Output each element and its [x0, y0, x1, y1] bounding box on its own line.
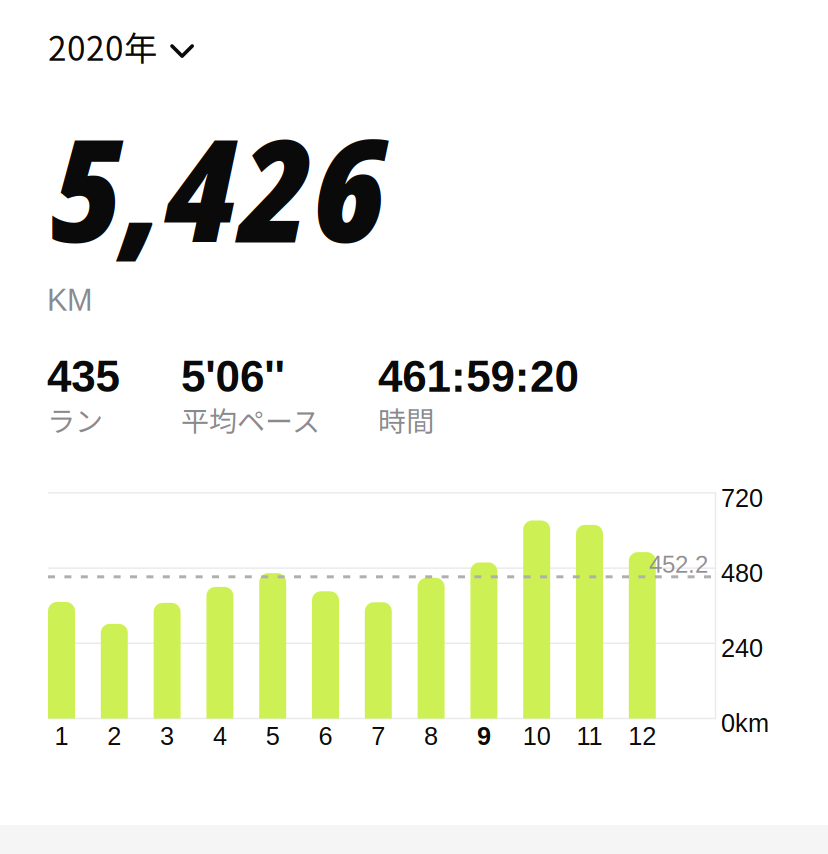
staticText: 452.2 [649, 551, 708, 578]
staticText: ラン [47, 399, 103, 440]
staticText: 720 [721, 484, 763, 512]
staticText: 480 [721, 559, 763, 587]
staticText: 6 [318, 722, 332, 750]
staticText: 240 [721, 634, 763, 662]
staticText: 時間 [378, 399, 434, 440]
staticText: 8 [424, 722, 438, 750]
staticText: KM [47, 283, 93, 317]
staticText: 2020年 [48, 22, 157, 70]
staticText: 10 [523, 722, 551, 750]
staticText: 5'06'' [181, 352, 284, 401]
staticText: 平均ペース [181, 399, 320, 440]
staticText: 0km [721, 709, 769, 737]
staticText: 2 [107, 722, 121, 750]
staticText: 9 [477, 722, 491, 750]
staticText: 461:59:20 [378, 352, 578, 401]
staticText: 435 [47, 352, 120, 401]
staticText: 12 [628, 722, 656, 750]
staticText: 7 [371, 722, 385, 750]
staticText: 4 [213, 722, 227, 750]
button[interactable]: 2020年 [41, 10, 217, 72]
staticText: 5,426 [50, 90, 385, 284]
staticText: 1 [54, 722, 68, 750]
staticText: 11 [576, 722, 602, 750]
staticText: 5 [266, 722, 280, 750]
staticText: 3 [160, 722, 174, 750]
